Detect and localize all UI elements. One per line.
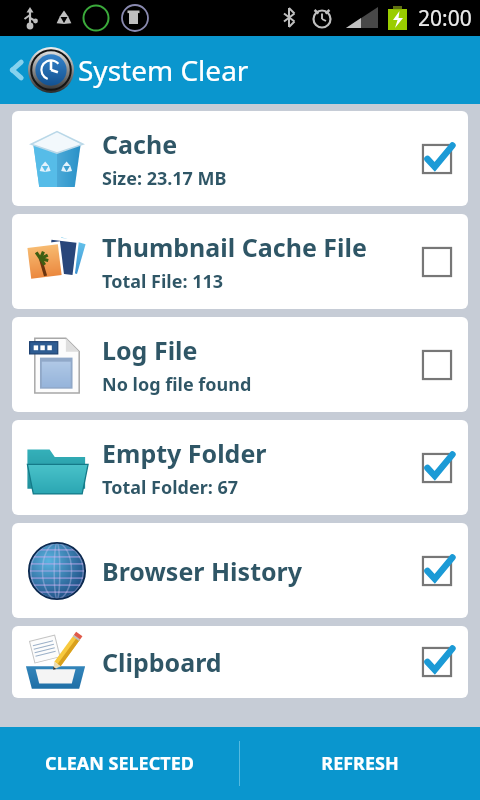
- staticText: 20:00: [418, 4, 472, 33]
- button[interactable]: Log File: [12, 317, 468, 412]
- staticText: System Clear: [78, 51, 249, 89]
- button[interactable]: Empty Folder: [12, 420, 468, 515]
- button[interactable]: Selected: [412, 134, 462, 184]
- button[interactable]: Not selected: [412, 237, 462, 287]
- staticText: REFRESH: [321, 751, 399, 776]
- button[interactable]: Not selected: [412, 340, 462, 390]
- staticText: Total Folder: 67: [102, 475, 239, 500]
- staticText: Browser History: [102, 554, 303, 588]
- staticText: Thumbnail Cache File: [102, 230, 367, 264]
- button[interactable]: CLEAN SELECTED: [0, 727, 239, 800]
- button[interactable]: Cache: [12, 111, 468, 206]
- button[interactable]: Selected: [412, 637, 462, 687]
- staticText: Total File: 113: [102, 269, 224, 294]
- button[interactable]: Thumbnail Cache File: [12, 214, 468, 309]
- staticText: No log file found: [102, 372, 252, 397]
- button[interactable]: Back: [4, 57, 30, 83]
- staticText: Clipboard: [102, 645, 222, 679]
- staticText: Size: 23.17 MB: [102, 166, 227, 191]
- button[interactable]: Browser History: [12, 523, 468, 618]
- button[interactable]: Clipboard: [12, 626, 468, 698]
- button[interactable]: Selected: [412, 443, 462, 493]
- staticText: Log File: [102, 333, 198, 367]
- staticText: Empty Folder: [102, 436, 267, 470]
- staticText: Cache: [102, 127, 178, 161]
- staticText: CLEAN SELECTED: [45, 751, 194, 776]
- button[interactable]: REFRESH: [240, 727, 480, 800]
- button[interactable]: Selected: [412, 546, 462, 596]
